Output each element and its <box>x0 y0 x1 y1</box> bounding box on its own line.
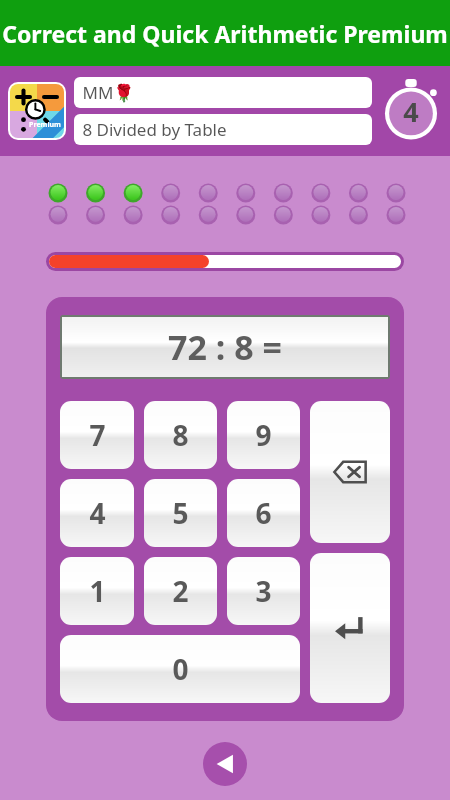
staticText: Correct and Quick Arithmetic Premium <box>2 18 448 49</box>
button[interactable]: 0 <box>60 635 300 703</box>
button[interactable]: 8 Divided by Table <box>74 114 372 145</box>
button[interactable]: Enter <box>310 553 390 703</box>
button[interactable]: 2 <box>144 557 217 625</box>
button[interactable]: App icon <box>10 84 64 138</box>
button[interactable]: Back <box>203 742 247 786</box>
staticText: 4 <box>89 494 106 532</box>
staticText: 4 <box>403 93 419 130</box>
button[interactable]: Backspace <box>310 401 390 543</box>
staticText: MM🌹 <box>82 81 135 104</box>
button[interactable]: MM🌹 <box>74 77 372 108</box>
staticText: 0 <box>172 650 189 688</box>
staticText: 8 Divided by Table <box>82 118 227 141</box>
button[interactable]: 7 <box>60 401 134 469</box>
staticText: 5 <box>172 494 189 532</box>
staticText: 7 <box>89 416 106 454</box>
button[interactable]: 6 <box>227 479 300 547</box>
staticText: Premium <box>29 120 61 130</box>
button[interactable]: 3 <box>227 557 300 625</box>
button[interactable]: 9 <box>227 401 300 469</box>
staticText: 72 : 8 = <box>168 324 282 370</box>
staticText: 6 <box>255 494 272 532</box>
button[interactable]: 4 <box>60 479 134 547</box>
button[interactable]: 8 <box>144 401 217 469</box>
button[interactable]: 5 <box>144 479 217 547</box>
staticText: 8 <box>172 416 189 454</box>
button[interactable]: Timer <box>380 80 442 142</box>
button[interactable]: 1 <box>60 557 134 625</box>
staticText: 1 <box>89 572 106 610</box>
staticText: 9 <box>255 416 272 454</box>
staticText: 3 <box>255 572 272 610</box>
staticText: 2 <box>172 572 189 610</box>
